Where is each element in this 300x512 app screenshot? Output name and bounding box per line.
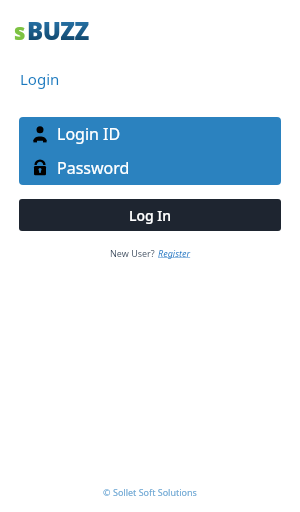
staticText: Password: [57, 157, 130, 179]
staticText: BUZZ: [27, 14, 89, 47]
button[interactable]: s: [14, 14, 89, 47]
staticText: Login: [20, 69, 60, 89]
staticText: Login ID: [57, 123, 121, 145]
staticText: s: [14, 16, 26, 46]
staticText: New User?: [110, 247, 158, 259]
button[interactable]: Register: [158, 247, 191, 259]
other: Login ID: [30, 124, 50, 144]
staticText: © Sollet Soft Solutions: [0, 486, 300, 498]
button[interactable]: Password: [19, 151, 281, 185]
button[interactable]: Login ID: [19, 117, 281, 151]
other: Password: [30, 158, 50, 178]
button[interactable]: Log In: [19, 199, 281, 231]
staticText: Log In: [129, 206, 172, 225]
staticText: Register: [158, 247, 191, 259]
